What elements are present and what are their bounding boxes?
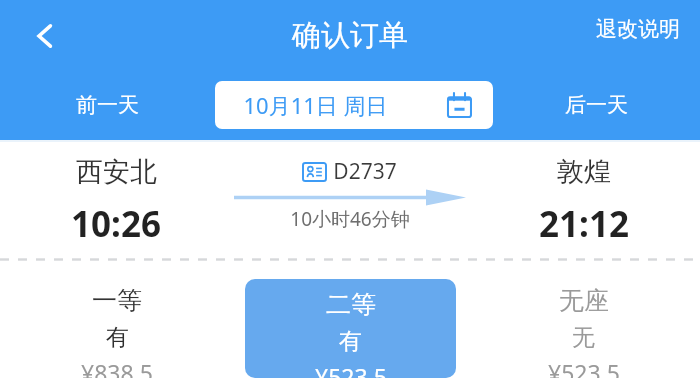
staticText: 有 [106, 323, 129, 352]
staticText: 无 [572, 323, 595, 352]
staticText: 西安北 [76, 155, 157, 189]
staticText: 10:26 [71, 200, 161, 248]
staticText: ¥838.5 [81, 357, 153, 378]
staticText: 敦煌 [557, 155, 611, 189]
button[interactable]: 前一天 [0, 80, 215, 130]
staticText: 有 [339, 327, 362, 356]
staticText: 后一天 [565, 92, 628, 118]
staticText: ¥523.5 [548, 357, 620, 378]
other: Pick date [448, 93, 471, 117]
staticText: 10小时46分钟 [290, 206, 410, 232]
staticText: 二等 [326, 289, 376, 320]
button[interactable]: Back [12, 6, 78, 66]
button[interactable]: 无座 [478, 279, 689, 378]
staticText: 一等 [92, 285, 142, 316]
button[interactable]: 退改说明 [588, 9, 688, 49]
button[interactable]: 10月11日 周日 [215, 81, 493, 129]
staticText: 21:12 [539, 200, 629, 248]
staticText: 10月11日 周日 [243, 90, 388, 120]
staticText: ¥523.5 [315, 361, 387, 378]
button[interactable]: 后一天 [493, 80, 700, 130]
staticText: 无座 [559, 285, 609, 316]
button[interactable]: 一等 [11, 279, 223, 378]
staticText: 确认订单 [292, 17, 408, 54]
staticText: 前一天 [76, 92, 139, 118]
button[interactable]: 二等 [245, 279, 456, 378]
staticText: D2737 [333, 157, 397, 186]
staticText: 退改说明 [596, 16, 680, 42]
